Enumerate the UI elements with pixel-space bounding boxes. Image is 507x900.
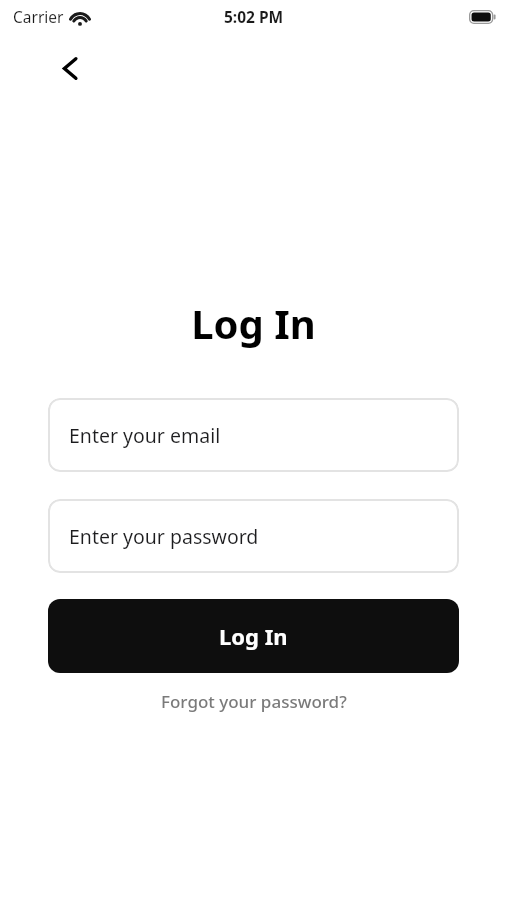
- button[interactable]: Log In: [48, 599, 459, 673]
- staticText: Carrier: [13, 6, 64, 27]
- staticText: Enter your password: [69, 523, 259, 550]
- staticText: 5:02 PM: [224, 6, 284, 27]
- button[interactable]: Enter your password: [48, 499, 459, 573]
- button[interactable]: Forgot your password?: [0, 684, 507, 719]
- staticText: Enter your email: [69, 422, 221, 449]
- button[interactable]: Enter your email: [48, 398, 459, 472]
- staticText: Log In: [0, 296, 507, 350]
- staticText: Log In: [219, 621, 288, 651]
- staticText: Forgot your password?: [161, 690, 347, 713]
- button[interactable]: Back: [46, 44, 94, 92]
